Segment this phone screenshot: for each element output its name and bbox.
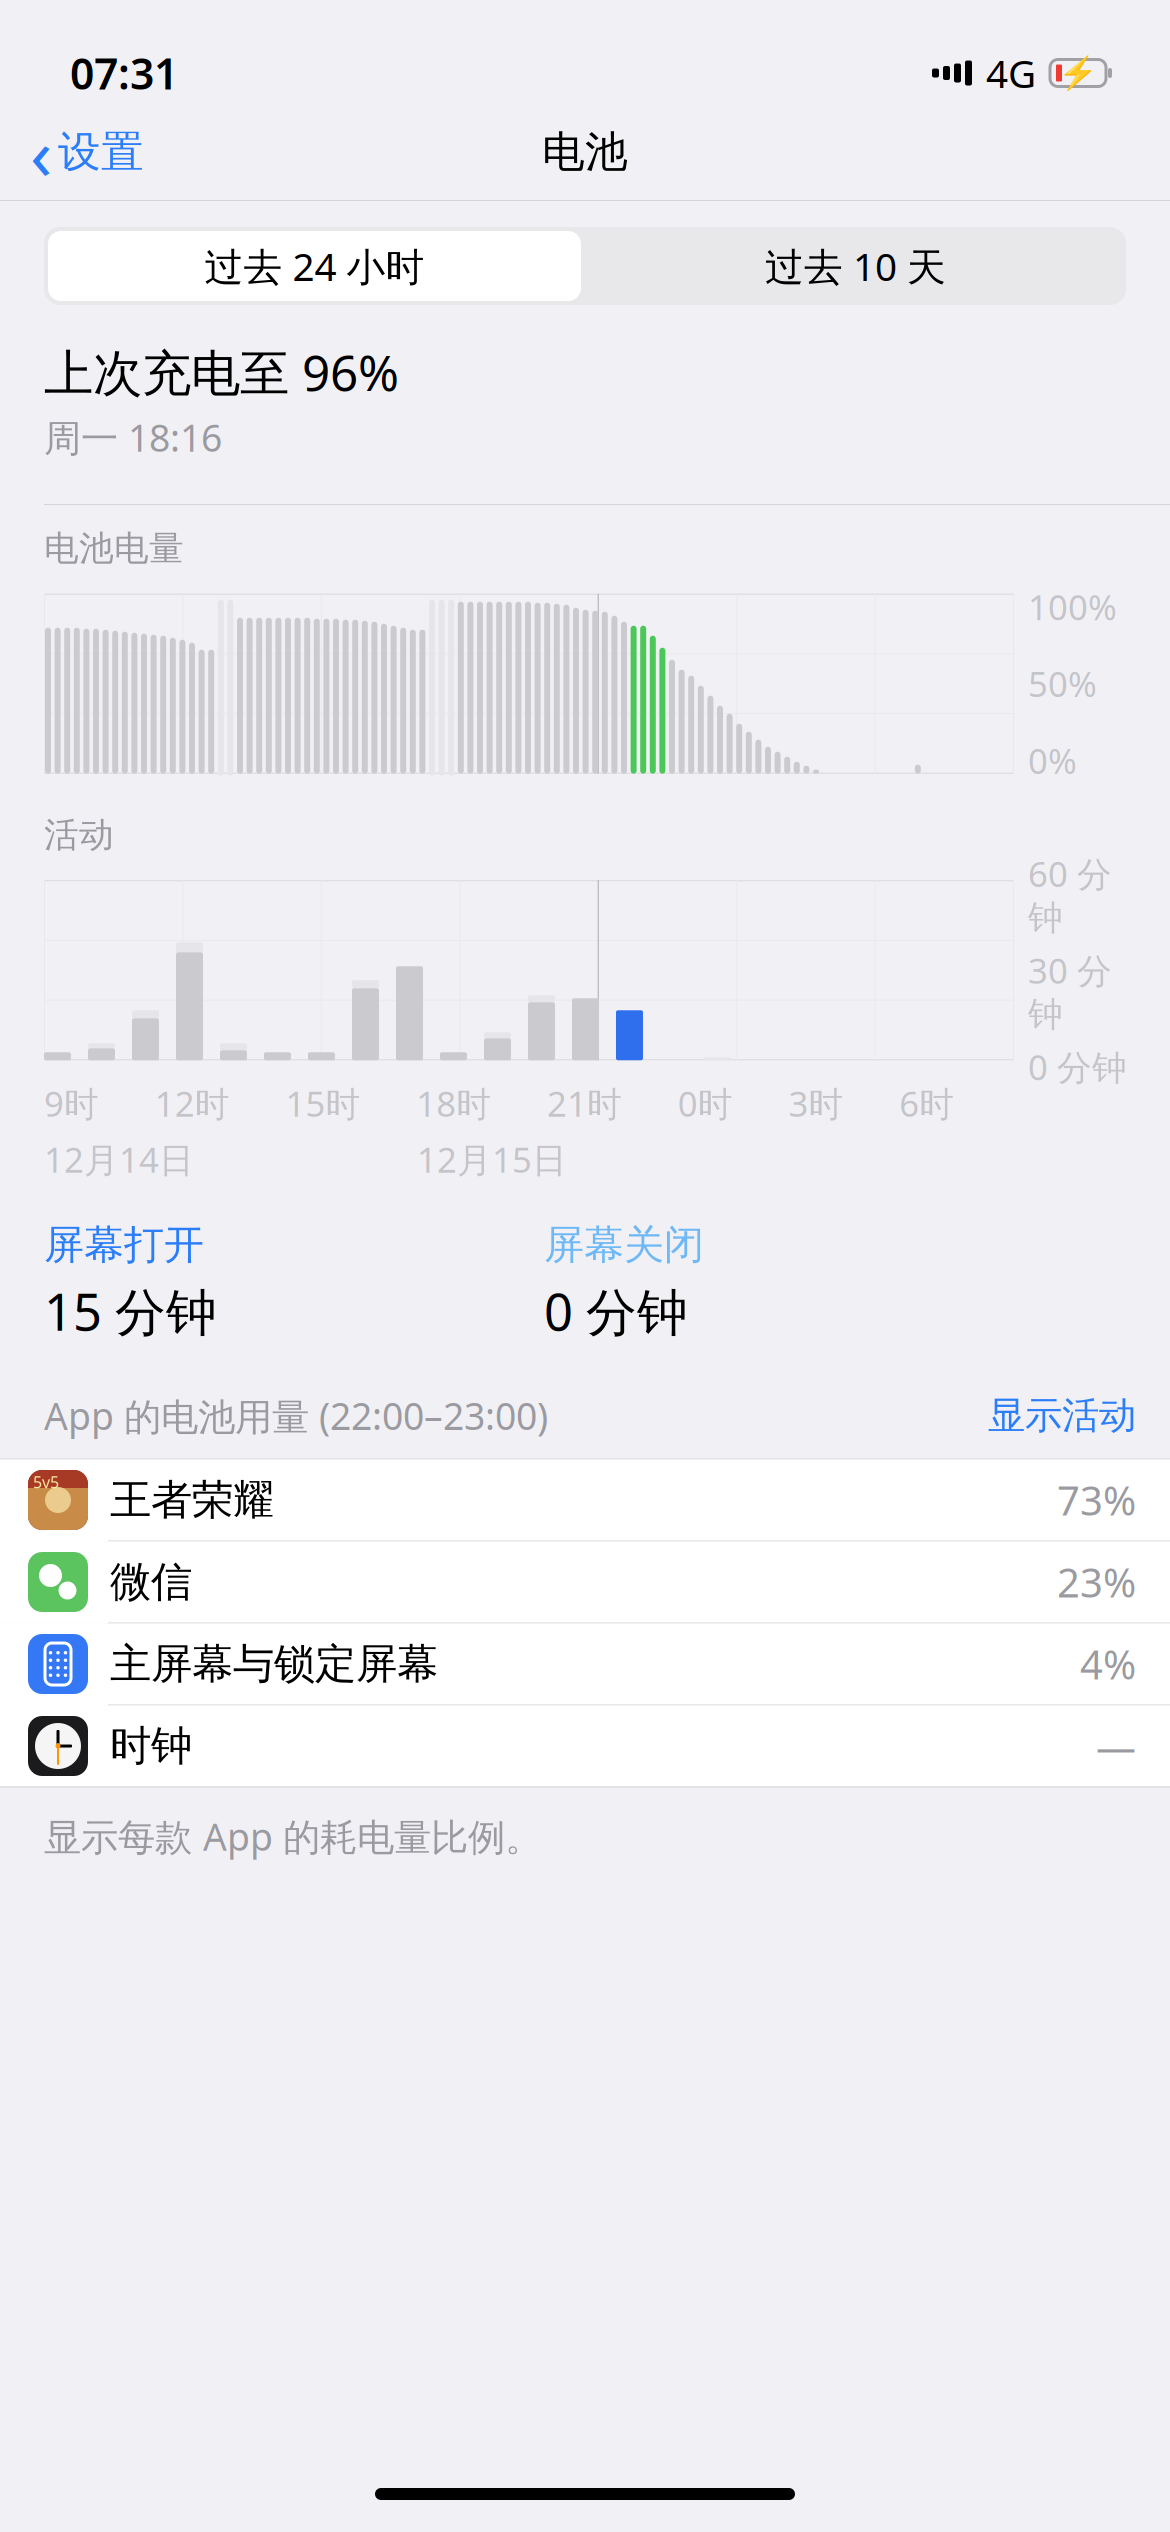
button[interactable]: 过去 10 天	[585, 227, 1126, 305]
staticText: ‹	[30, 104, 52, 200]
staticText: 50%	[1028, 661, 1097, 707]
staticText: 显示活动	[988, 1393, 1136, 1439]
staticText: ⚡	[1058, 55, 1098, 91]
staticText: 73%	[1057, 1473, 1136, 1526]
staticText: 0 分钟	[544, 1277, 688, 1345]
button[interactable]: 过去 24 小时	[44, 227, 585, 305]
staticText: 过去 24 小时	[204, 240, 424, 292]
staticText: 12月14日	[44, 1136, 194, 1182]
staticText: 15 分钟	[44, 1277, 217, 1345]
staticText: 主屏幕与锁定屏幕	[110, 1639, 438, 1689]
staticText: 过去 10 天	[765, 240, 946, 292]
staticText: 0 分钟	[1028, 1044, 1127, 1090]
staticText: App 的电池用量 (22:00–23:00)	[44, 1391, 548, 1440]
staticText: 6时	[899, 1080, 954, 1126]
staticText: 上次充电至 96%	[44, 339, 399, 404]
staticText: 屏幕关闭	[544, 1220, 704, 1269]
staticText: 15时	[285, 1080, 360, 1126]
staticText: 07:31	[70, 45, 178, 101]
staticText: 18时	[416, 1080, 491, 1126]
staticText: 显示每款 App 的耗电量比例。	[44, 1811, 542, 1861]
staticText: 4%	[1080, 1637, 1136, 1690]
staticText: 4G	[986, 47, 1036, 99]
staticText: 60 分钟	[1028, 851, 1112, 939]
button[interactable]: ‹	[0, 107, 164, 197]
staticText: 王者荣耀	[110, 1475, 274, 1525]
staticText: 21时	[547, 1080, 622, 1126]
button[interactable]: 5v5	[0, 1459, 1170, 1541]
staticText: 30 分钟	[1028, 947, 1112, 1036]
staticText: 微信	[110, 1557, 192, 1607]
staticText: 5v5	[33, 1471, 59, 1493]
staticText: 0时	[678, 1080, 733, 1126]
staticText: 设置	[58, 126, 144, 178]
button[interactable]: 时钟	[0, 1705, 1170, 1786]
staticText: 23%	[1057, 1555, 1136, 1608]
staticText: 电池电量	[44, 527, 184, 570]
button[interactable]: 显示活动	[988, 1393, 1136, 1439]
staticText: 100%	[1028, 584, 1117, 630]
staticText: 电池	[542, 126, 628, 178]
staticText: 12月15日	[417, 1136, 567, 1182]
staticText: —	[1096, 1719, 1136, 1772]
staticText: 12时	[155, 1080, 230, 1126]
staticText: 周一 18:16	[44, 412, 222, 462]
staticText: 时钟	[110, 1721, 192, 1771]
button[interactable]: 主屏幕与锁定屏幕	[0, 1623, 1170, 1705]
staticText: 9时	[44, 1080, 99, 1126]
staticText: 屏幕打开	[44, 1220, 204, 1269]
staticText: 3时	[788, 1080, 843, 1126]
staticText: 0%	[1028, 738, 1077, 784]
button[interactable]: 微信	[0, 1541, 1170, 1623]
staticText: 活动	[44, 814, 114, 856]
